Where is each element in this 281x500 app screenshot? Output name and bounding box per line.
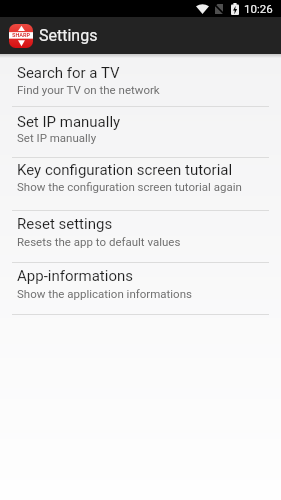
staticText: App-informations (17, 267, 134, 285)
staticText: Reset settings (17, 215, 113, 233)
staticText: Set IP manually (17, 113, 121, 131)
staticText: SHARP (12, 32, 31, 38)
staticText: Resets the app to default values (17, 235, 181, 248)
staticText: Key configuration screen tutorial (17, 161, 233, 179)
staticText: 10:26 (244, 2, 273, 15)
button[interactable]: Key configuration screen tutorial (0, 158, 281, 211)
staticText: Settings (39, 26, 98, 45)
staticText: Search for a TV (17, 64, 120, 82)
staticText: Find your TV on the network (17, 83, 160, 96)
button[interactable]: Set IP manually (0, 107, 281, 158)
staticText: Show the application informations (17, 287, 192, 300)
button[interactable]: Reset settings (0, 211, 281, 263)
staticText: Set IP manually (17, 131, 97, 144)
button[interactable]: App-informations (0, 263, 281, 315)
staticText: Show the configuration screen tutorial a… (17, 180, 242, 193)
button[interactable]: Search for a TV (0, 54, 281, 107)
